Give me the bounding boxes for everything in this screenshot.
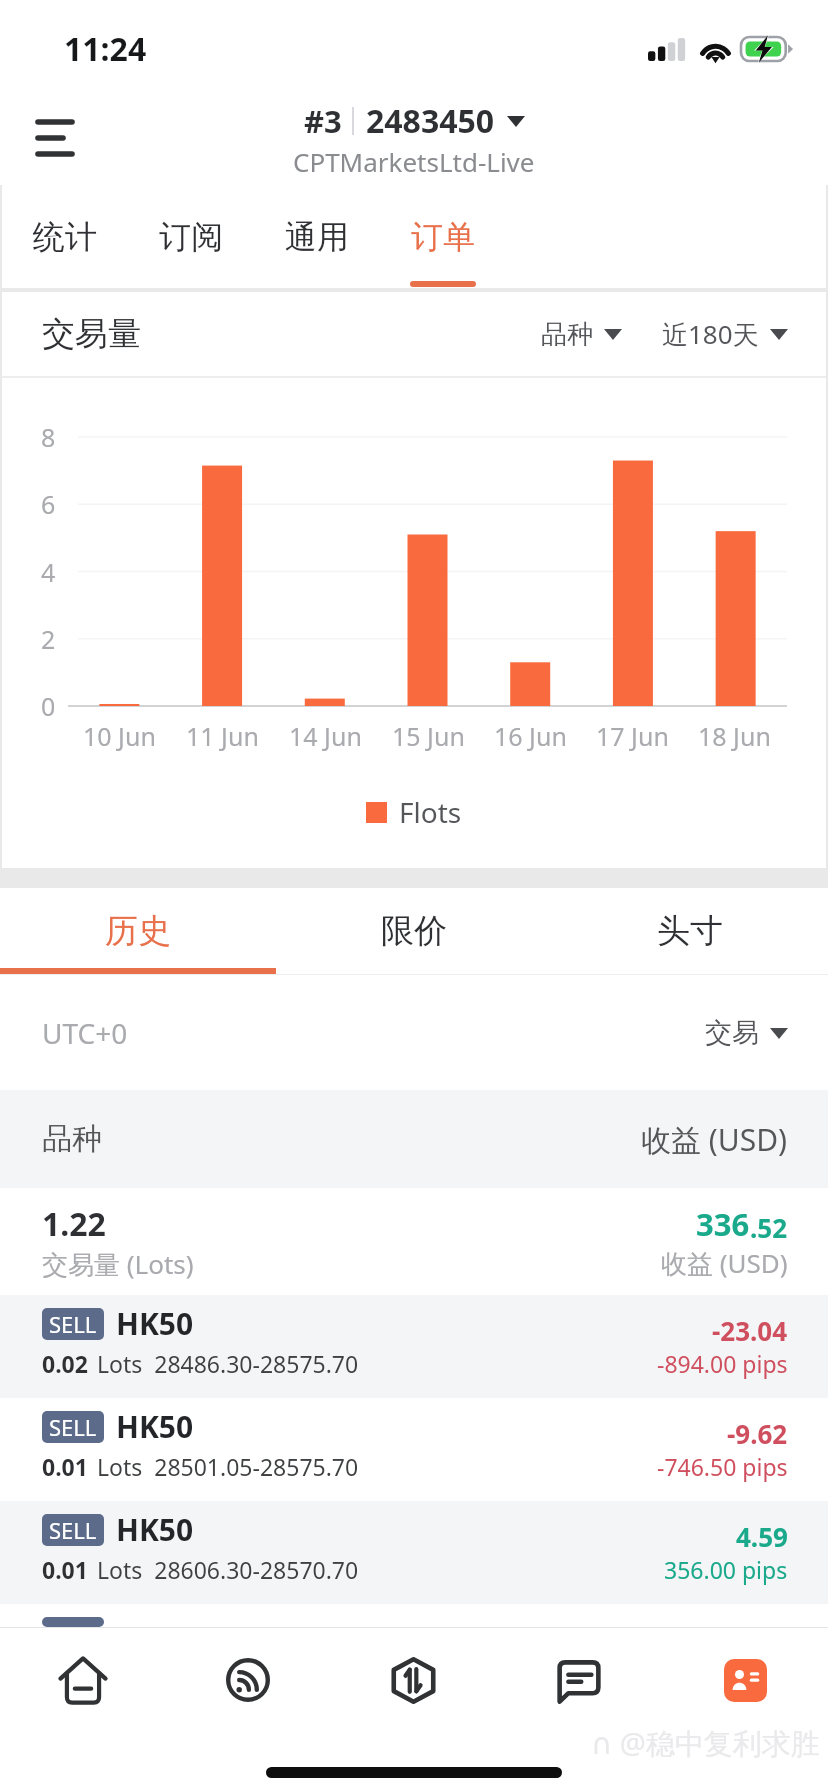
staticText: 交易 bbox=[705, 1016, 759, 1050]
button[interactable]: 订单 bbox=[380, 185, 506, 288]
staticText: Lots 28486.30-28575.70 bbox=[97, 1348, 359, 1379]
staticText: 4.59 bbox=[736, 1519, 788, 1554]
button[interactable]: SELL bbox=[0, 1398, 828, 1501]
staticText: 2 bbox=[41, 622, 56, 656]
staticText: -894.00 pips bbox=[657, 1348, 788, 1379]
staticText: SELL bbox=[49, 1309, 97, 1339]
staticText: 0.01 bbox=[42, 1451, 88, 1482]
staticText: SELL bbox=[49, 1515, 97, 1545]
button[interactable]: SELL bbox=[0, 1295, 828, 1398]
staticText: 品种 bbox=[541, 318, 593, 351]
staticText: 0 bbox=[41, 689, 56, 723]
button[interactable]: Account bbox=[662, 1627, 828, 1733]
staticText: 16 Jun bbox=[494, 719, 567, 753]
staticText: 订阅 bbox=[159, 217, 223, 257]
button[interactable]: Menu bbox=[22, 105, 88, 171]
staticText: HK50 bbox=[116, 1303, 194, 1344]
staticText: 14 Jun bbox=[289, 719, 362, 753]
button[interactable]: Home bbox=[0, 1627, 165, 1733]
button[interactable]: 统计 bbox=[2, 185, 128, 288]
staticText: 历史 bbox=[105, 910, 171, 952]
staticText: Lots 28501.05-28575.70 bbox=[97, 1451, 359, 1482]
staticText: .52 bbox=[750, 1210, 788, 1245]
staticText: 0.02 bbox=[42, 1348, 88, 1379]
staticText: 近180天 bbox=[662, 316, 759, 352]
staticText: 17 Jun bbox=[596, 719, 669, 753]
staticText: 11 Jun bbox=[186, 719, 259, 753]
button[interactable]: #3 bbox=[293, 99, 535, 179]
button[interactable]: 近180天 bbox=[662, 316, 788, 352]
staticText: 10 Jun bbox=[83, 719, 156, 753]
staticText: 0.01 bbox=[42, 1554, 88, 1585]
staticText: SELL bbox=[49, 1412, 97, 1442]
staticText: 6 bbox=[41, 487, 56, 521]
staticText: CPTMarketsLtd-Live bbox=[293, 144, 535, 179]
button[interactable]: Messages bbox=[496, 1627, 662, 1733]
staticText: 11:24 bbox=[64, 27, 147, 71]
button[interactable]: Signals bbox=[165, 1627, 330, 1733]
staticText: ∩ @稳中复利求胜 bbox=[591, 1723, 820, 1763]
button[interactable]: 通用 bbox=[254, 185, 380, 288]
button[interactable]: Trade bbox=[330, 1627, 496, 1733]
staticText: 336 bbox=[696, 1203, 750, 1245]
staticText: -9.62 bbox=[727, 1416, 788, 1451]
staticText: 4 bbox=[41, 555, 56, 589]
staticText: 限价 bbox=[381, 910, 447, 952]
staticText: Lots 28606.30-28570.70 bbox=[97, 1554, 359, 1585]
staticText: 15 Jun bbox=[392, 719, 465, 753]
staticText: 356.00 pips bbox=[664, 1554, 788, 1585]
staticText: 统计 bbox=[33, 217, 97, 257]
staticText: 1.22 bbox=[42, 1202, 106, 1246]
staticText: -23.04 bbox=[712, 1313, 788, 1348]
staticText: Flots bbox=[399, 793, 462, 831]
staticText: 交易量 bbox=[42, 313, 141, 355]
staticText: 收益 (USD) bbox=[641, 1119, 788, 1160]
staticText: 品种 bbox=[42, 1120, 102, 1158]
button[interactable]: 品种 bbox=[541, 318, 622, 351]
staticText: 头寸 bbox=[657, 910, 723, 952]
staticText: 收益 (USD) bbox=[661, 1245, 788, 1281]
staticText: 订单 bbox=[411, 217, 475, 257]
button[interactable]: 限价 bbox=[276, 888, 552, 975]
staticText: UTC+0 bbox=[42, 1014, 128, 1052]
staticText: HK50 bbox=[116, 1406, 194, 1447]
staticText: HK50 bbox=[116, 1509, 194, 1550]
staticText: 18 Jun bbox=[698, 719, 771, 753]
staticText: 交易量 (Lots) bbox=[42, 1246, 194, 1282]
staticText: 2483450 bbox=[366, 99, 495, 143]
button[interactable]: 历史 bbox=[0, 888, 276, 975]
button[interactable]: 交易 bbox=[705, 1016, 788, 1050]
staticText: #3 bbox=[304, 100, 342, 142]
staticText: -746.50 pips bbox=[657, 1451, 788, 1482]
staticText: 通用 bbox=[285, 217, 349, 257]
staticText: 8 bbox=[41, 420, 56, 454]
button[interactable]: SELL bbox=[0, 1501, 828, 1604]
button[interactable]: 订阅 bbox=[128, 185, 254, 288]
button[interactable]: 头寸 bbox=[552, 888, 828, 975]
